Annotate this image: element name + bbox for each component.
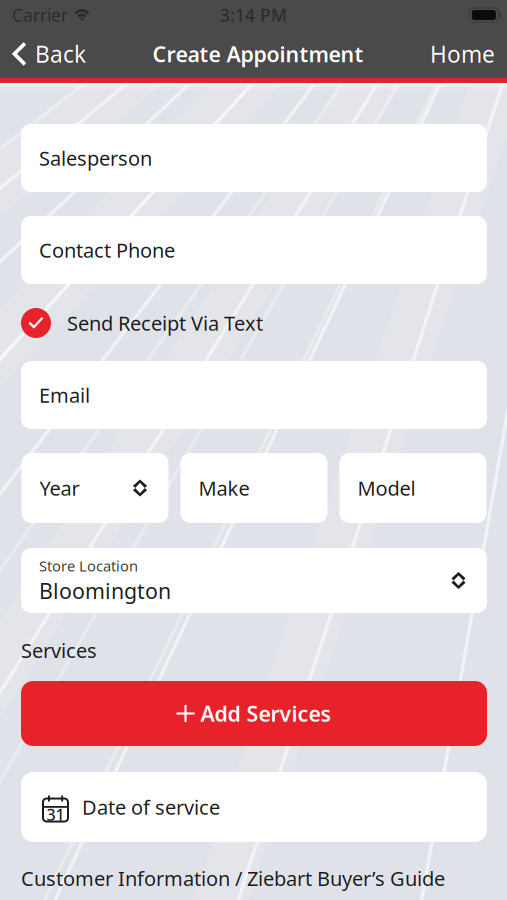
- staticText: Store Location: [39, 556, 138, 576]
- staticText: Create Appointment: [152, 40, 363, 68]
- button[interactable]: Home: [430, 30, 507, 78]
- staticText: Model: [357, 475, 415, 501]
- button[interactable]: Salesperson: [21, 124, 487, 192]
- staticText: Send Receipt Via Text: [67, 310, 263, 336]
- staticText: Customer Information / Ziebart Buyer’s G…: [21, 865, 445, 892]
- staticText: Contact Phone: [39, 237, 175, 263]
- staticText: Add Services: [200, 699, 331, 728]
- button[interactable]: Contact Phone: [21, 216, 487, 284]
- staticText: Bloomington: [39, 577, 171, 605]
- button[interactable]: Send Receipt Via Text: [21, 303, 487, 343]
- staticText: 3:14 PM: [220, 3, 287, 26]
- button[interactable]: 31: [21, 772, 487, 842]
- staticText: Salesperson: [39, 145, 152, 171]
- staticText: Year: [39, 475, 79, 501]
- button[interactable]: Store Location: [21, 548, 487, 613]
- staticText: 31: [46, 804, 64, 825]
- button[interactable]: Add Services: [21, 681, 487, 746]
- staticText: Home: [430, 39, 495, 69]
- button[interactable]: Email: [21, 361, 487, 429]
- staticText: Carrier: [12, 3, 68, 26]
- staticText: Services: [21, 637, 97, 664]
- staticText: Back: [35, 39, 86, 69]
- staticText: Make: [198, 475, 249, 501]
- staticText: Date of service: [82, 794, 220, 820]
- button[interactable]: Back: [0, 30, 86, 78]
- staticText: Email: [39, 382, 90, 408]
